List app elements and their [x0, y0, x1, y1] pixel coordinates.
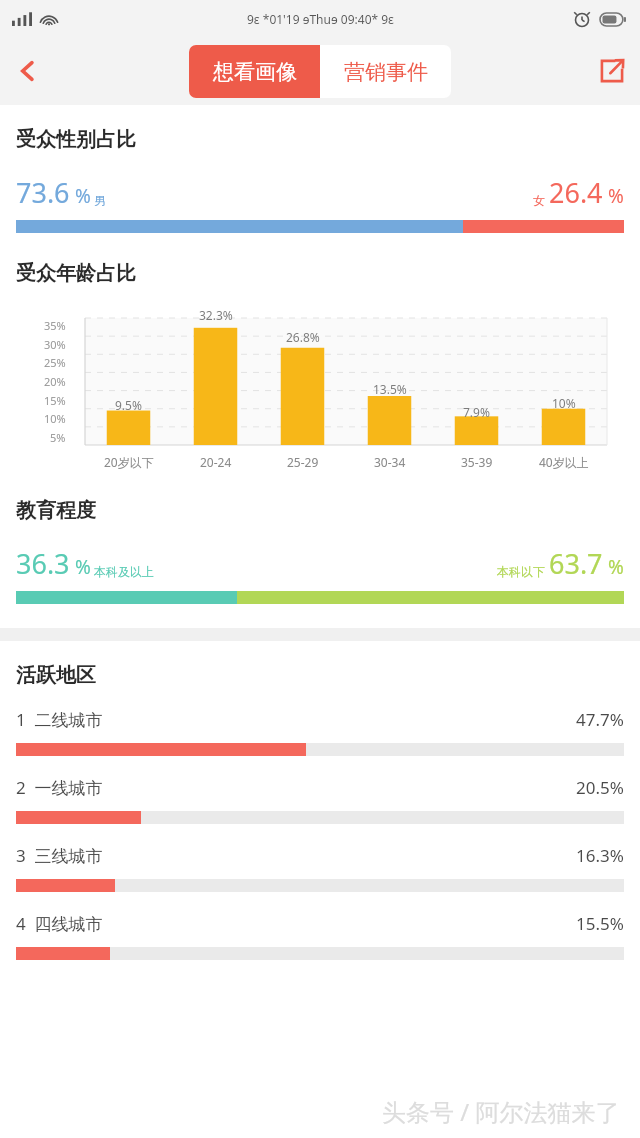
- staticText: 30-34: [374, 454, 406, 470]
- button[interactable]: 想看画像: [189, 45, 320, 98]
- staticText: 2 一线城市: [16, 776, 103, 799]
- staticText: 36.3: [16, 545, 70, 582]
- staticText: 35%: [44, 318, 66, 333]
- staticText: 15.5%: [576, 912, 624, 935]
- staticText: 男: [91, 192, 107, 208]
- button[interactable]: 3 三线城市: [0, 824, 640, 892]
- staticText: 本科及以上: [91, 563, 155, 579]
- button[interactable]: Share: [584, 43, 640, 99]
- staticText: 32.3%: [199, 307, 233, 323]
- button[interactable]: 4 四线城市: [0, 892, 640, 960]
- staticText: 16.3%: [576, 844, 624, 867]
- staticText: 4 四线城市: [16, 912, 103, 935]
- staticText: 活跃地区: [16, 663, 96, 688]
- staticText: 26.4: [549, 174, 603, 211]
- staticText: 受众年龄占比: [16, 261, 136, 286]
- staticText: 20.5%: [576, 776, 624, 799]
- staticText: 63.7: [549, 545, 603, 582]
- staticText: 营销事件: [344, 59, 428, 85]
- staticText: 5%: [50, 430, 66, 445]
- staticText: 47.7%: [576, 708, 624, 731]
- button[interactable]: 1 二线城市: [0, 688, 640, 756]
- staticText: 9ɛ *01'19 ɘThuɘ 09:40* 9ɛ: [247, 11, 394, 27]
- staticText: 女: [533, 192, 549, 208]
- staticText: 15%: [44, 393, 66, 408]
- staticText: 20岁以下: [104, 454, 154, 470]
- staticText: %: [70, 554, 91, 580]
- staticText: 73.6: [16, 174, 70, 211]
- staticText: 20-24: [200, 454, 232, 470]
- staticText: 本科以下: [497, 563, 549, 579]
- staticText: 7.9%: [463, 404, 490, 420]
- staticText: 3 三线城市: [16, 844, 103, 867]
- button[interactable]: 2 一线城市: [0, 756, 640, 824]
- staticText: 20%: [44, 374, 66, 389]
- staticText: 26.8%: [286, 329, 320, 345]
- staticText: 30%: [44, 337, 66, 352]
- staticText: %: [603, 554, 624, 580]
- staticText: 10%: [44, 411, 66, 426]
- staticText: 13.5%: [373, 381, 407, 397]
- staticText: 1 二线城市: [16, 708, 103, 731]
- staticText: %: [603, 183, 624, 209]
- staticText: 头条号 / 阿尔法猫来了: [382, 1095, 620, 1128]
- staticText: 25%: [44, 355, 66, 370]
- staticText: 10%: [552, 395, 576, 411]
- button[interactable]: 营销事件: [320, 45, 451, 98]
- staticText: 受众性别占比: [16, 127, 136, 152]
- staticText: 35-39: [461, 454, 493, 470]
- staticText: 9.5%: [115, 397, 142, 413]
- staticText: 想看画像: [213, 59, 297, 85]
- staticText: 40岁以上: [539, 454, 589, 470]
- staticText: 教育程度: [16, 498, 96, 523]
- staticText: 25-29: [287, 454, 319, 470]
- staticText: %: [70, 183, 91, 209]
- button[interactable]: Back: [0, 43, 56, 99]
